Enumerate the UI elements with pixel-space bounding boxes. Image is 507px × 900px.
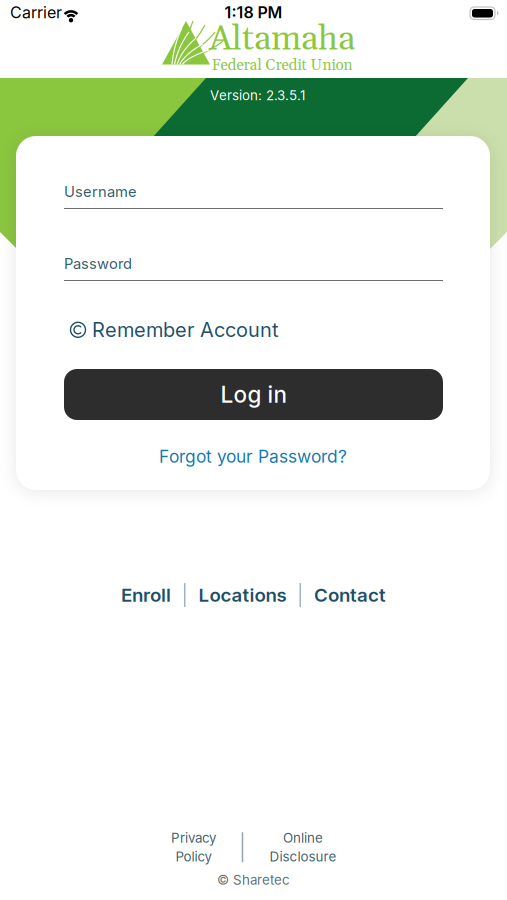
button[interactable]: Privacy Policy [171, 830, 216, 864]
button[interactable]: Username [64, 183, 443, 228]
button[interactable]: Forgot your Password? [159, 446, 347, 467]
staticText: Federal Credit Union [211, 56, 352, 75]
button[interactable]: Remember Account [70, 318, 279, 342]
staticText: Online Disclosure [269, 830, 336, 864]
staticText: Enroll [121, 584, 171, 606]
staticText: Username [64, 183, 137, 200]
staticText: Carrier [10, 3, 62, 22]
staticText: Version: 2.3.5.1 [210, 87, 305, 103]
staticText: Altamaha [209, 18, 355, 61]
staticText: 1:18 PM [224, 3, 282, 22]
staticText: Locations [198, 584, 286, 606]
button[interactable]: Locations [198, 584, 286, 606]
staticText: © Sharetec [217, 872, 290, 888]
button[interactable]: Contact [314, 584, 386, 606]
staticText: Password [64, 255, 132, 272]
staticText: Privacy Policy [171, 830, 216, 864]
button[interactable]: Password [64, 255, 443, 300]
staticText: Log in [220, 381, 286, 408]
button[interactable]: Log in [64, 369, 443, 420]
staticText: Remember Account [92, 318, 279, 342]
button[interactable]: Online Disclosure [269, 830, 336, 864]
staticText: Contact [314, 584, 386, 606]
staticText: Forgot your Password? [159, 446, 347, 467]
button[interactable]: Enroll [121, 584, 171, 606]
